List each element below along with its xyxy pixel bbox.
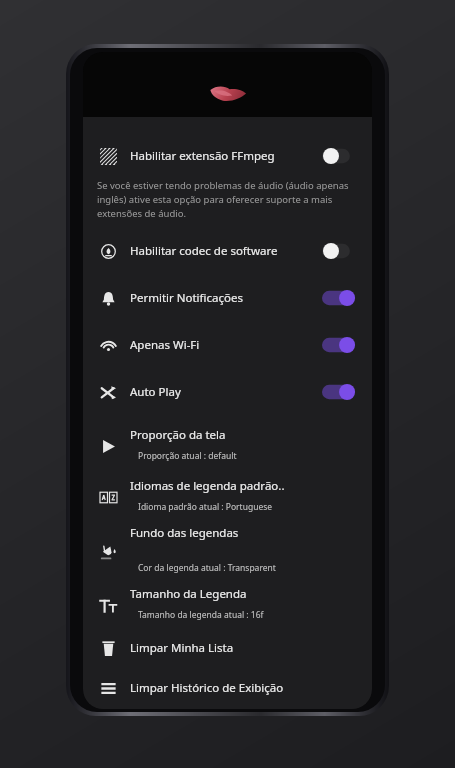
button[interactable]: Fundo das legendas: [83, 521, 372, 580]
button[interactable]: Idiomas de legenda padrão..: [83, 474, 372, 519]
staticText: Tamanho da legenda atual : 16f: [138, 609, 264, 621]
button[interactable]: Habilitar extensão FFmpeg: [83, 139, 372, 173]
staticText: Fundo das legendas: [130, 525, 239, 541]
button[interactable]: On: [322, 335, 356, 355]
staticText: Cor da legenda atual : Transparent: [138, 562, 276, 574]
button[interactable]: On: [322, 288, 356, 308]
staticText: Proporção da tela: [130, 427, 226, 443]
staticText: Permitir Notificações: [130, 290, 322, 306]
staticText: Limpar Minha Lista: [130, 640, 234, 656]
staticText: Proporção atual : default: [138, 450, 237, 462]
staticText: Habilitar extensão FFmpeg: [130, 148, 322, 164]
staticText: Tamanho da Legenda: [130, 586, 247, 602]
button[interactable]: Tamanho da Legenda: [83, 582, 372, 627]
button[interactable]: Apenas Wi-Fi: [83, 328, 372, 362]
button[interactable]: Off: [322, 241, 356, 261]
staticText: Auto Play: [130, 384, 322, 400]
button[interactable]: Limpar Histórico de Exibição: [83, 673, 372, 703]
button[interactable]: Proporção da tela: [83, 423, 372, 468]
staticText: Idioma padrão atual : Portuguese: [138, 501, 273, 513]
button[interactable]: Habilitar codec de software: [83, 234, 372, 268]
button[interactable]: Limpar Minha Lista: [83, 633, 372, 663]
button[interactable]: Off: [322, 146, 356, 166]
staticText: Idiomas de legenda padrão..: [130, 478, 285, 494]
button[interactable]: Permitir Notificações: [83, 281, 372, 315]
button[interactable]: Auto Play: [83, 375, 372, 409]
staticText: Limpar Histórico de Exibição: [130, 680, 284, 696]
staticText: Habilitar codec de software: [130, 243, 322, 259]
button[interactable]: On: [322, 382, 356, 402]
staticText: Apenas Wi-Fi: [130, 337, 322, 353]
staticText: Se você estiver tendo problemas de áudio…: [97, 179, 352, 220]
